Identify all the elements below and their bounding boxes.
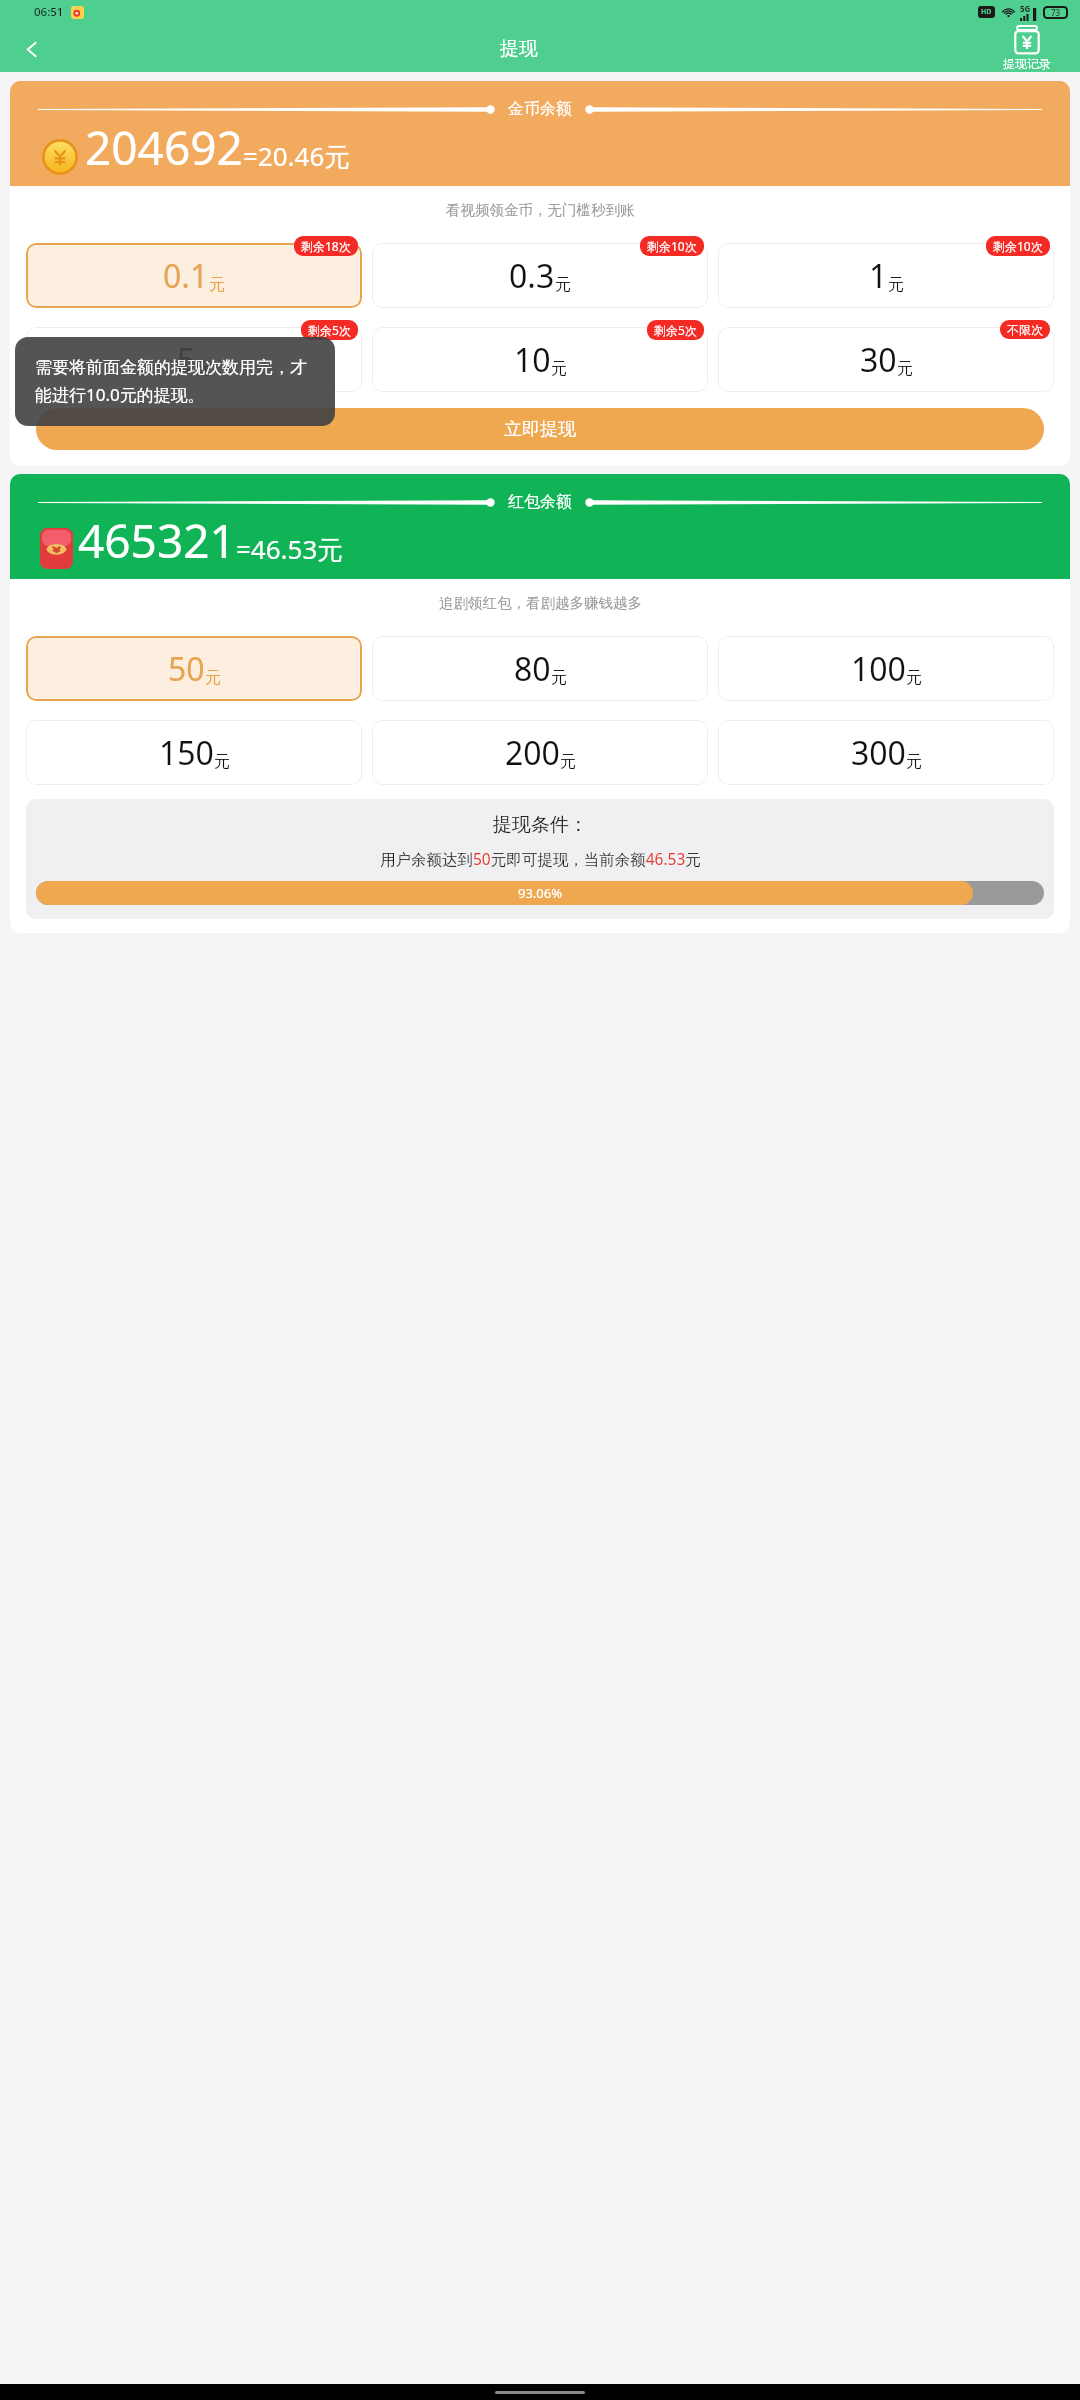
button[interactable]: 300 xyxy=(718,720,1054,785)
staticText: 元 xyxy=(209,275,225,295)
staticText: 剩余5次 xyxy=(308,322,351,338)
staticText: 剩余10次 xyxy=(993,238,1043,254)
staticText: 93.06% xyxy=(518,884,563,902)
staticText: 元 xyxy=(551,668,567,688)
button[interactable]: 5 xyxy=(26,327,362,392)
staticText: 10 xyxy=(514,338,551,382)
staticText: 不限次 xyxy=(1007,322,1043,337)
staticText: 提现条件： xyxy=(493,813,588,837)
staticText: 150 xyxy=(159,731,214,775)
staticText: HD xyxy=(981,7,992,17)
staticText: =46.53元 xyxy=(236,531,344,567)
button[interactable]: 立即提现 xyxy=(36,408,1044,450)
staticText: 元 xyxy=(205,668,221,688)
staticText: 元 xyxy=(551,359,567,379)
staticText: 200 xyxy=(505,731,560,775)
button[interactable]: 0.3 xyxy=(372,243,708,308)
staticText: 红包余额 xyxy=(508,492,572,512)
button[interactable]: 80 xyxy=(372,636,708,701)
staticText: 5G xyxy=(1020,3,1031,14)
staticText: 80 xyxy=(514,647,551,691)
button[interactable]: 提现记录 xyxy=(988,25,1066,72)
staticText: =20.46元 xyxy=(243,138,351,174)
button[interactable]: Back xyxy=(14,31,50,67)
staticText: 0.3 xyxy=(509,254,555,298)
staticText: 30 xyxy=(860,338,897,382)
staticText: 0.1 xyxy=(163,254,209,298)
staticText: 用户余额达到50元即可提现，当前余额46.53元 xyxy=(380,848,701,869)
button[interactable]: 100 xyxy=(718,636,1054,701)
staticText: 73 xyxy=(1051,7,1061,18)
staticText: 剩余10次 xyxy=(647,238,697,254)
staticText: 元 xyxy=(888,275,904,295)
staticText: 元 xyxy=(196,359,212,379)
staticText: 300 xyxy=(851,731,906,775)
staticText: 提现 xyxy=(500,37,538,61)
staticText: 剩余5次 xyxy=(654,322,697,338)
button[interactable]: 50 xyxy=(26,636,362,701)
button[interactable]: 200 xyxy=(372,720,708,785)
staticText: 金币余额 xyxy=(508,99,572,119)
staticText: 1 xyxy=(869,254,888,298)
staticText: 元 xyxy=(897,359,913,379)
staticText: 465321 xyxy=(78,509,236,572)
staticText: 5 xyxy=(177,338,196,382)
staticText: 204692 xyxy=(85,116,243,179)
staticText: 立即提现 xyxy=(504,418,576,441)
staticText: 元 xyxy=(906,668,922,688)
button[interactable]: 150 xyxy=(26,720,362,785)
staticText: 元 xyxy=(214,752,230,772)
button[interactable]: 30 xyxy=(718,327,1054,392)
staticText: 元 xyxy=(560,752,576,772)
staticText: 剩余18次 xyxy=(301,238,351,254)
staticText: 需要将前面金额的提现次数用完，才能进行10.0元的提现。 xyxy=(35,357,315,406)
button[interactable]: 1 xyxy=(718,243,1054,308)
staticText: 提现记录 xyxy=(1003,56,1051,71)
staticText: 06:51 xyxy=(34,4,64,20)
staticText: 100 xyxy=(851,647,906,691)
staticText: 看视频领金币，无门槛秒到账 xyxy=(446,201,635,219)
button[interactable]: 0.1 xyxy=(26,243,362,308)
staticText: 元 xyxy=(555,275,571,295)
staticText: 追剧领红包，看剧越多赚钱越多 xyxy=(439,594,642,612)
staticText: 元 xyxy=(906,752,922,772)
staticText: 50 xyxy=(168,647,205,691)
button[interactable]: 10 xyxy=(372,327,708,392)
